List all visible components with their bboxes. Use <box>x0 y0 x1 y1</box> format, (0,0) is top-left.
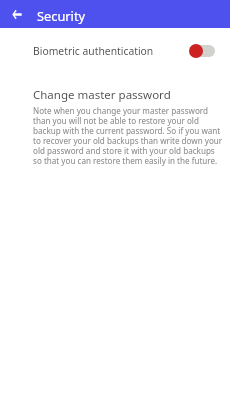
button[interactable]: Back <box>3 0 31 28</box>
staticText: Biometric authentication <box>33 44 154 58</box>
button[interactable]: Biometric authentication toggle <box>190 44 214 58</box>
staticText: Note when you change your master passwor… <box>33 105 224 166</box>
button[interactable]: Biometric authentication <box>0 38 230 64</box>
staticText: Change master password <box>33 87 171 103</box>
staticText: Security <box>37 7 86 24</box>
